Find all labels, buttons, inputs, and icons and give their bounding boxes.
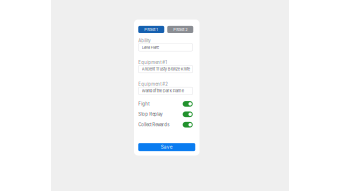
staticText: Ancient Trusty Bronze Knife [142, 67, 190, 71]
staticText: Preset 1 [144, 27, 158, 32]
button[interactable]: Stop Replay [138, 109, 193, 119]
button[interactable]: Fight [138, 99, 193, 109]
button[interactable]: Save [138, 143, 195, 151]
staticText: Equipment #1 [138, 60, 167, 65]
button[interactable]: Preset 1 [138, 26, 164, 33]
button[interactable]: Preset 2 [167, 26, 193, 33]
staticText: Equipment #2 [138, 82, 168, 87]
staticText: Collect Rewards [138, 122, 169, 127]
staticText: Stop Replay [138, 112, 162, 117]
staticText: Lava Flare [142, 45, 159, 50]
staticText: Ability [138, 38, 150, 43]
staticText: Save [161, 144, 173, 150]
button[interactable]: Collect Rewards [138, 119, 193, 130]
staticText: Wand of the Dark Flame [142, 88, 184, 93]
staticText: Preset 2 [173, 27, 187, 32]
staticText: Fight [138, 101, 149, 106]
